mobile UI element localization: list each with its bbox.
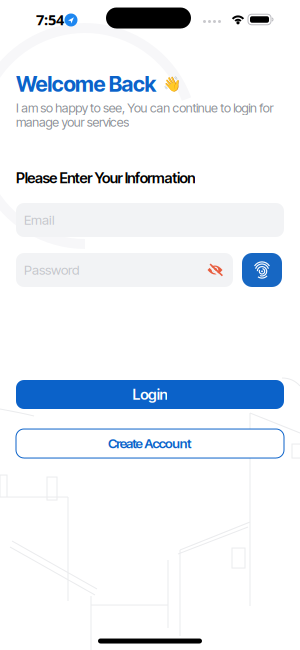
- staticText: Password: [24, 262, 79, 278]
- staticText: Please Enter Your Information: [16, 169, 195, 187]
- staticText: Welcome Back: [16, 71, 157, 97]
- button[interactable]: Login: [16, 380, 284, 409]
- staticText: Email: [24, 212, 55, 228]
- staticText: 7:54: [36, 10, 64, 29]
- button[interactable]: Login with fingerprint: [242, 253, 282, 287]
- staticText: manage your services: [16, 114, 129, 130]
- button[interactable]: Create Account: [16, 429, 284, 458]
- staticText: Login: [133, 386, 167, 403]
- staticText: I am so happy to see, You can continue t…: [16, 100, 273, 115]
- staticText: 👋: [163, 76, 181, 92]
- staticText: Create Account: [108, 435, 192, 451]
- button[interactable]: Show password: [203, 260, 227, 280]
